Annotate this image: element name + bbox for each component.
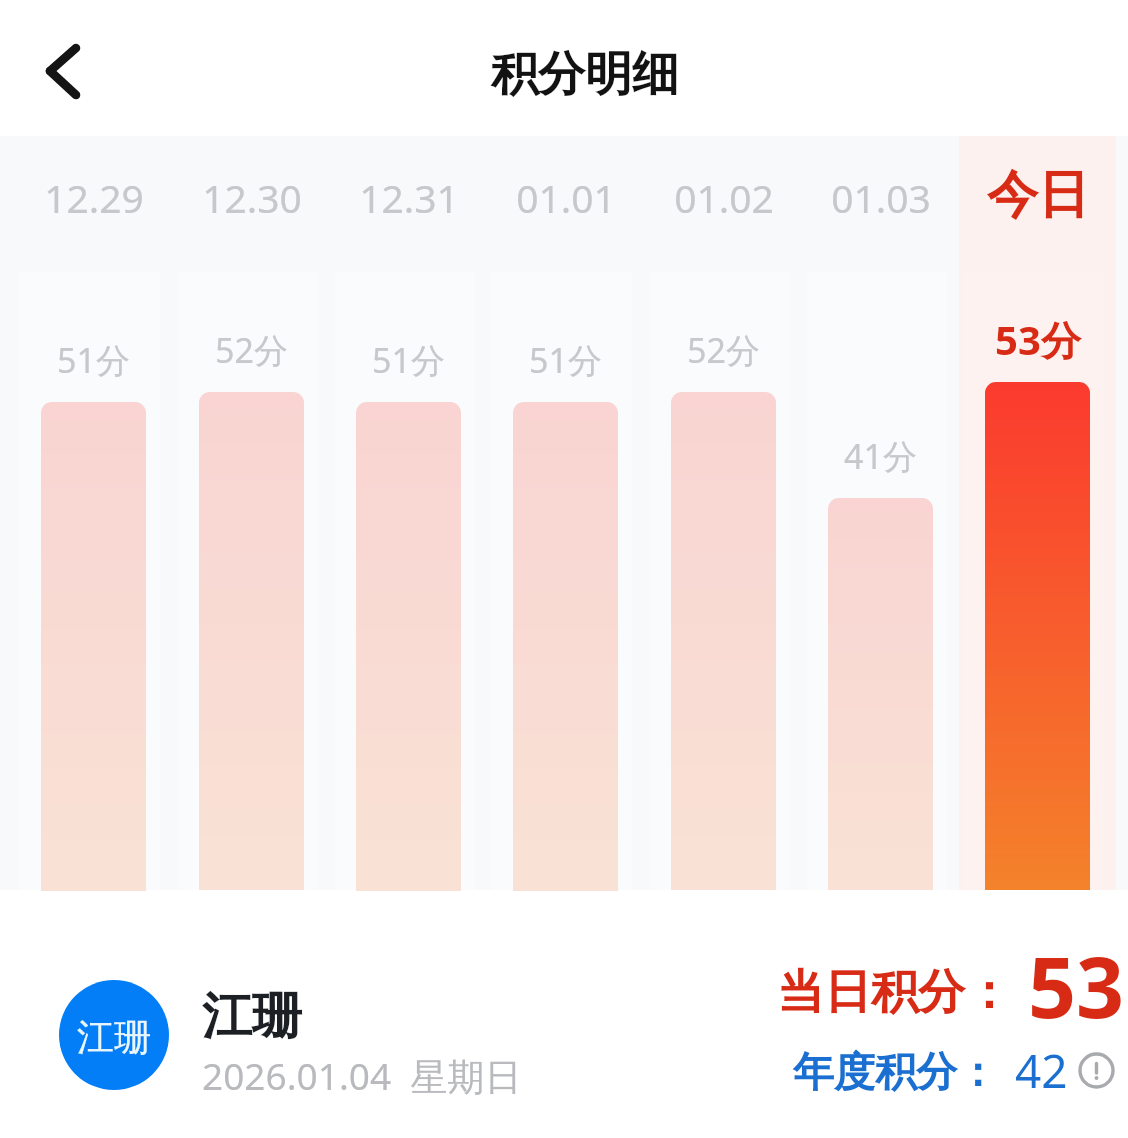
button[interactable]: Info [1078, 1052, 1115, 1089]
staticText: 12.30 [202, 171, 302, 224]
button[interactable] [828, 498, 933, 890]
staticText: 12.31 [359, 171, 459, 224]
staticText: 今日 [987, 163, 1089, 227]
button[interactable]: 江珊 [59, 980, 169, 1090]
button[interactable] [41, 402, 146, 891]
staticText: 53分 [995, 312, 1081, 367]
staticText: 51分 [372, 337, 445, 383]
staticText: 52分 [687, 327, 760, 373]
button[interactable]: Back [30, 38, 96, 104]
staticText: 江珊 [202, 985, 302, 1048]
staticText: 01.01 [516, 171, 616, 224]
staticText: 12.29 [44, 171, 144, 224]
staticText: 53 [1028, 928, 1125, 1042]
button[interactable] [985, 382, 1090, 890]
button[interactable] [199, 392, 304, 890]
staticText: 51分 [529, 337, 602, 383]
staticText: 01.03 [831, 171, 931, 224]
staticText: 42 [1015, 1039, 1068, 1102]
staticText: 当日积分： [777, 963, 1012, 1022]
staticText: 52分 [215, 327, 288, 373]
button[interactable] [671, 392, 776, 890]
button[interactable] [356, 402, 461, 891]
staticText: 2026.01.04 星期日 [202, 1050, 522, 1101]
staticText: 51分 [57, 337, 130, 383]
button[interactable] [513, 402, 618, 891]
staticText: 01.02 [674, 171, 774, 224]
staticText: 积分明细 [491, 45, 679, 104]
staticText: 41分 [844, 433, 917, 479]
staticText: 年度积分： [793, 1047, 998, 1099]
staticText: 江珊 [77, 1014, 151, 1061]
